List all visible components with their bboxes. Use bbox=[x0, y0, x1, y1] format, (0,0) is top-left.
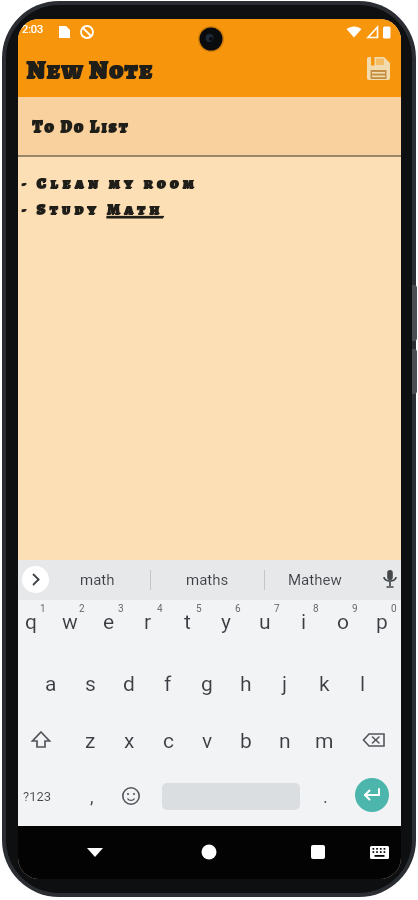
staticText: - Study Math bbox=[21, 199, 164, 221]
staticText: o bbox=[337, 610, 349, 635]
button[interactable] bbox=[116, 781, 146, 811]
button[interactable]: , bbox=[73, 774, 111, 818]
button[interactable] bbox=[192, 835, 226, 869]
button[interactable] bbox=[22, 566, 49, 593]
staticText: New Note bbox=[27, 52, 154, 87]
button[interactable]: k bbox=[305, 662, 343, 706]
staticText: d bbox=[123, 672, 135, 697]
staticText: p bbox=[376, 610, 388, 635]
button[interactable] bbox=[301, 835, 335, 869]
button[interactable] bbox=[78, 835, 112, 869]
staticText: 8 bbox=[313, 603, 319, 615]
staticText: To Do List bbox=[32, 115, 130, 138]
staticText: To Do List bbox=[32, 116, 130, 139]
staticText: . bbox=[323, 786, 328, 807]
staticText: z bbox=[85, 729, 96, 754]
staticText: n bbox=[279, 729, 291, 754]
button[interactable]: u bbox=[246, 600, 284, 644]
staticText: 7 bbox=[274, 603, 280, 615]
button[interactable]: n bbox=[266, 719, 304, 763]
staticText: r bbox=[144, 610, 152, 635]
staticText: k bbox=[319, 672, 330, 697]
staticText: b bbox=[240, 729, 252, 754]
button[interactable]: i bbox=[285, 600, 323, 644]
staticText: l bbox=[360, 672, 366, 697]
staticText: c bbox=[163, 729, 174, 754]
button[interactable] bbox=[356, 720, 394, 764]
staticText: maths bbox=[186, 571, 229, 589]
staticText: 0 bbox=[391, 603, 397, 615]
button[interactable]: f bbox=[149, 662, 187, 706]
button[interactable]: e bbox=[90, 600, 128, 644]
staticText: 6 bbox=[235, 603, 241, 615]
button[interactable]: v bbox=[188, 719, 226, 763]
button[interactable]: z bbox=[71, 719, 109, 763]
staticText: 4 bbox=[157, 603, 163, 615]
staticText: u bbox=[259, 610, 271, 635]
staticText: e bbox=[103, 610, 115, 635]
staticText: - Study Math bbox=[22, 198, 165, 220]
button[interactable] bbox=[22, 720, 60, 764]
staticText: i bbox=[301, 610, 307, 635]
staticText: To Do List bbox=[33, 115, 131, 138]
button[interactable]: - Clean my room bbox=[18, 157, 401, 560]
button[interactable]: o bbox=[324, 600, 362, 644]
button[interactable] bbox=[375, 564, 401, 594]
staticText: g bbox=[201, 672, 213, 697]
staticText: - Clean my room bbox=[21, 173, 198, 195]
staticText: 5 bbox=[196, 603, 202, 615]
button[interactable]: a bbox=[32, 662, 70, 706]
staticText: s bbox=[85, 672, 96, 697]
staticText: Mathew bbox=[288, 571, 342, 589]
button[interactable]: d bbox=[110, 662, 148, 706]
staticText: f bbox=[164, 672, 172, 697]
button[interactable] bbox=[355, 778, 389, 812]
button[interactable]: g bbox=[188, 662, 226, 706]
staticText: v bbox=[202, 729, 213, 754]
staticText: t bbox=[184, 610, 191, 635]
staticText: New Note bbox=[26, 52, 153, 87]
staticText: x bbox=[124, 729, 135, 754]
button[interactable]: Mathew bbox=[270, 560, 360, 600]
button[interactable]: j bbox=[266, 662, 304, 706]
staticText: New Note bbox=[26, 53, 153, 88]
button[interactable]: t bbox=[168, 600, 206, 644]
button[interactable]: w bbox=[51, 600, 89, 644]
button[interactable]: ?123 bbox=[18, 774, 59, 818]
staticText: 3 bbox=[118, 603, 124, 615]
staticText: y bbox=[221, 610, 231, 635]
staticText: a bbox=[45, 672, 57, 697]
staticText: m bbox=[315, 729, 334, 754]
button[interactable]: b bbox=[227, 719, 265, 763]
button[interactable]: r bbox=[129, 600, 167, 644]
staticText: ?123 bbox=[23, 789, 52, 804]
button[interactable]: y bbox=[207, 600, 245, 644]
staticText: 1 bbox=[40, 603, 46, 615]
button[interactable]: To Do List bbox=[18, 97, 401, 155]
staticText: , bbox=[90, 786, 94, 807]
staticText: h bbox=[240, 672, 252, 697]
staticText: 2:03 bbox=[22, 23, 44, 36]
staticText: w bbox=[62, 610, 78, 635]
button[interactable] bbox=[359, 49, 399, 89]
button[interactable]: x bbox=[110, 719, 148, 763]
staticText: - Clean my room bbox=[21, 172, 198, 194]
button[interactable]: h bbox=[227, 662, 265, 706]
button[interactable]: c bbox=[149, 719, 187, 763]
button[interactable]: . bbox=[306, 774, 344, 818]
button[interactable]: m bbox=[305, 719, 343, 763]
button[interactable]: p bbox=[363, 600, 401, 644]
button[interactable]: s bbox=[71, 662, 109, 706]
staticText: math bbox=[80, 571, 115, 589]
button[interactable]: l bbox=[344, 662, 382, 706]
staticText: q bbox=[25, 610, 37, 635]
staticText: j bbox=[282, 672, 288, 697]
button[interactable] bbox=[362, 835, 396, 869]
staticText: 2 bbox=[79, 603, 85, 615]
staticText: 9 bbox=[352, 603, 358, 615]
button[interactable]: math bbox=[52, 560, 142, 600]
button[interactable]: maths bbox=[162, 560, 252, 600]
staticText: - Clean my room bbox=[22, 172, 199, 194]
button[interactable]: q bbox=[18, 600, 50, 644]
